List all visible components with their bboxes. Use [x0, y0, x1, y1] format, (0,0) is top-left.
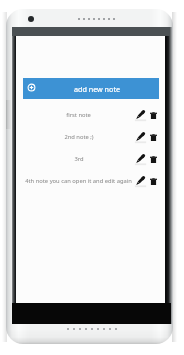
button[interactable]: Edit note [136, 132, 145, 141]
button[interactable]: Edit note [136, 176, 145, 185]
staticText: 3rd [74, 155, 84, 163]
staticText: add new note [74, 84, 121, 94]
button[interactable]: Delete note [150, 112, 157, 119]
button[interactable]: add new note [23, 78, 159, 99]
button[interactable]: Volume [6, 100, 11, 129]
button[interactable]: Delete note [150, 134, 157, 141]
button[interactable]: Delete note [150, 156, 157, 163]
button[interactable]: Edit note [136, 110, 145, 119]
button[interactable]: first note [16, 104, 165, 126]
button[interactable]: Delete note [150, 178, 157, 185]
button[interactable]: 4th note you can open it and edit again [16, 170, 165, 192]
staticText: first note [66, 111, 91, 119]
button[interactable]: 3rd [16, 148, 165, 170]
staticText: 4th note you can open it and edit again [25, 177, 132, 185]
button[interactable]: 2nd note ;) [16, 126, 165, 148]
button[interactable]: Edit note [136, 154, 145, 163]
staticText: 2nd note ;) [64, 133, 94, 141]
